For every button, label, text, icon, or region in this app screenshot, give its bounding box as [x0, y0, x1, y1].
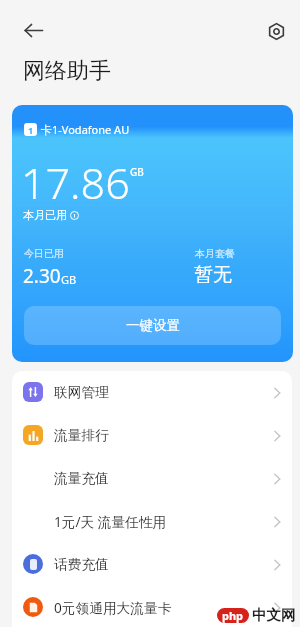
button[interactable]: Back: [18, 15, 48, 45]
staticText: 流量充值: [54, 470, 109, 487]
staticText: 话费充值: [54, 556, 109, 573]
staticText: 网络助手: [23, 57, 111, 85]
button[interactable]: 一键设置: [24, 306, 281, 345]
staticText: php: [222, 608, 244, 623]
staticText: 2.30: [23, 263, 61, 289]
staticText: 中文网: [252, 606, 296, 624]
staticText: GB: [130, 165, 144, 179]
staticText: GB: [61, 272, 77, 287]
button[interactable]: 流量充值: [12, 457, 292, 500]
staticText: 1: [28, 124, 34, 136]
button[interactable]: 1元/天 流量任性用: [12, 500, 292, 543]
staticText: 联网管理: [54, 384, 109, 401]
staticText: 卡1-Vodafone AU: [41, 122, 130, 137]
staticText: 暂无: [194, 263, 232, 287]
staticText: 一键设置: [126, 317, 180, 334]
button[interactable]: 联网管理: [12, 371, 292, 414]
button[interactable]: 流量排行: [12, 414, 292, 457]
staticText: 本月套餐: [195, 247, 235, 260]
staticText: 0元领通用大流量卡: [54, 598, 172, 617]
button[interactable]: 话费充值: [12, 543, 292, 586]
staticText: 流量排行: [54, 427, 109, 444]
button[interactable]: 0元领通用大流量卡: [12, 586, 292, 627]
staticText: 1元/天 流量任性用: [54, 512, 167, 531]
staticText: 今日已用: [24, 247, 64, 260]
button[interactable]: Settings: [261, 15, 291, 45]
staticText: 17.86: [21, 153, 130, 212]
staticText: 本月已用: [23, 208, 67, 222]
